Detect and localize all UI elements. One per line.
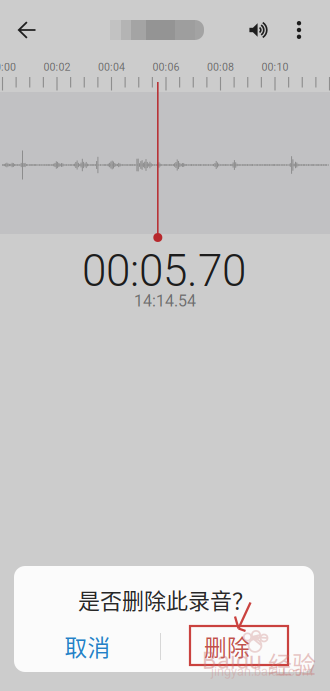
- button[interactable]: 取消: [39, 624, 135, 668]
- staticText: jingyan.baidu.com: [211, 664, 313, 679]
- button[interactable]: Speaker: [249, 23, 269, 37]
- staticText: 14:14.54: [134, 292, 196, 310]
- staticText: 00:10: [261, 61, 288, 73]
- staticText: 00:00: [0, 61, 16, 73]
- button[interactable]: Back: [17, 15, 36, 45]
- staticText: 经验: [268, 646, 316, 681]
- staticText: 00:05.70: [82, 245, 246, 297]
- button[interactable]: More options: [297, 21, 301, 39]
- staticText: 取消: [64, 630, 110, 662]
- staticText: 删除: [204, 630, 250, 662]
- staticText: 00:06: [152, 61, 179, 73]
- staticText: 是否删除此录音？: [78, 584, 254, 615]
- button[interactable]: 删除: [179, 624, 275, 668]
- staticText: Baidu: [202, 647, 262, 674]
- staticText: 00:08: [207, 61, 234, 73]
- staticText: 00:04: [98, 61, 125, 73]
- staticText: 00:02: [43, 61, 70, 73]
